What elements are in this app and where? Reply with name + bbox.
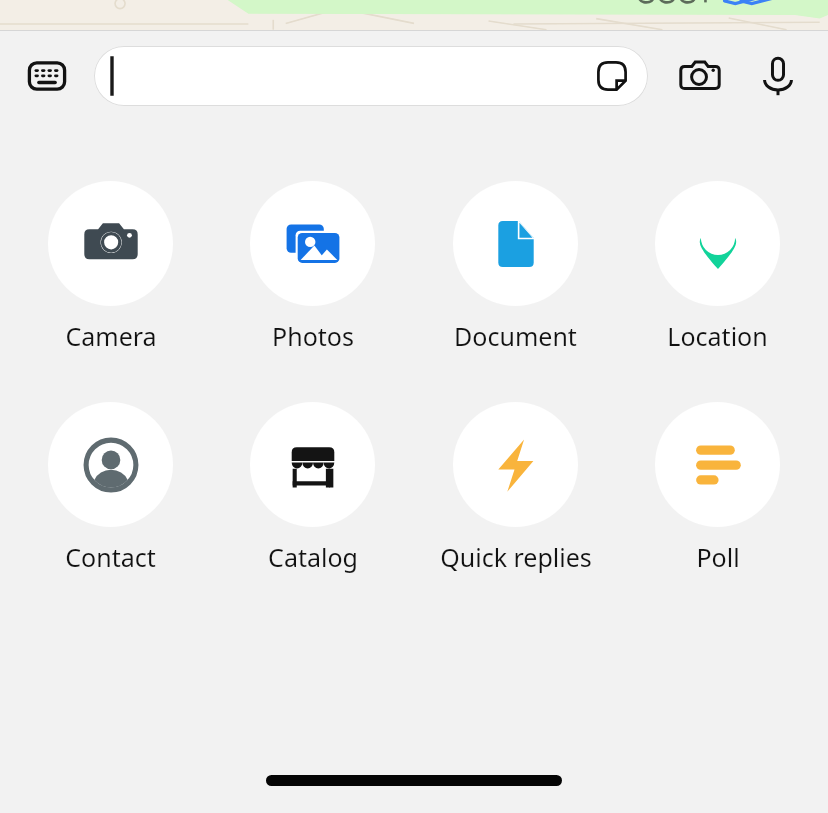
staticText: Poll (696, 540, 740, 574)
staticText: Catalog (268, 540, 358, 574)
button[interactable]: Stickers (94, 46, 648, 106)
staticText: Quick replies (440, 540, 592, 574)
button[interactable]: Location (625, 179, 810, 355)
button[interactable]: Camera (674, 50, 726, 102)
button[interactable]: Stickers (590, 54, 634, 98)
button[interactable]: Poll (625, 400, 810, 576)
staticText: Location (667, 319, 768, 353)
button[interactable]: Catalog (220, 400, 405, 576)
button[interactable]: Quick replies (423, 400, 608, 576)
button[interactable]: Voice message (752, 50, 804, 102)
button[interactable]: Document (423, 179, 608, 355)
staticText: Contact (65, 540, 156, 574)
button[interactable]: Camera (18, 179, 203, 355)
staticText: Document (454, 319, 577, 353)
button[interactable]: Keyboard (24, 53, 70, 99)
staticText: Camera (65, 319, 157, 353)
staticText: Photos (272, 319, 354, 353)
button[interactable]: Photos (220, 179, 405, 355)
button[interactable]: Contact (18, 400, 203, 576)
